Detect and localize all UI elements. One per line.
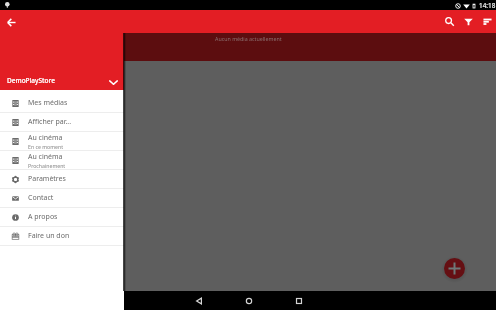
staticText: Au cinéma — [28, 152, 63, 162]
staticText: Paramètres — [28, 174, 66, 184]
button[interactable]: DemoPlayStore — [0, 10, 124, 90]
button[interactable]: Ajouter — [444, 258, 465, 279]
button[interactable]: A propos — [0, 208, 124, 226]
staticText: Contact — [28, 193, 54, 203]
staticText: Faire un don — [28, 231, 70, 241]
staticText: Afficher par... — [28, 117, 72, 127]
button[interactable]: Paramètres — [0, 170, 124, 188]
staticText: Aucun média actuellement — [215, 35, 282, 42]
button[interactable]: Trier — [478, 12, 496, 31]
button[interactable]: Faire un don — [0, 227, 124, 245]
button[interactable]: Applications récentes — [289, 291, 308, 310]
staticText: A propos — [28, 212, 58, 222]
staticText: DemoPlayStore — [7, 76, 55, 85]
staticText: 14:18 — [479, 1, 496, 10]
button[interactable]: Contact — [0, 189, 124, 207]
button[interactable]: Afficher par... — [0, 113, 124, 131]
button[interactable]: Filtrer — [459, 12, 478, 31]
button[interactable]: Rechercher — [440, 12, 459, 31]
staticText: En ce moment — [28, 143, 64, 150]
button[interactable]: Retour — [2, 13, 20, 31]
staticText: Mes médias — [28, 98, 68, 108]
staticText: Au cinéma — [28, 133, 63, 143]
button[interactable]: Au cinéma — [0, 132, 124, 150]
button[interactable]: Changer de compte — [106, 75, 120, 89]
button[interactable]: Retour — [189, 291, 208, 310]
button[interactable]: Au cinéma — [0, 151, 124, 169]
staticText: Prochainement — [28, 162, 66, 169]
button[interactable]: Accueil — [239, 291, 258, 310]
button[interactable]: Mes médias — [0, 94, 124, 112]
